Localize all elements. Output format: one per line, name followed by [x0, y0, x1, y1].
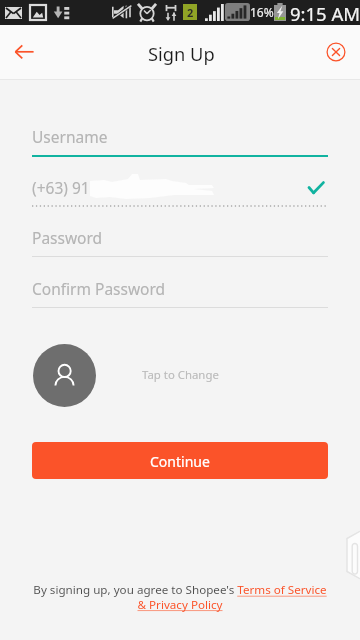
button[interactable]: Close: [314, 25, 358, 69]
staticText: 9:15 AM: [290, 1, 360, 26]
staticText: Sign Up: [148, 41, 215, 66]
staticText: Username: [32, 126, 108, 147]
staticText: Password: [32, 227, 103, 248]
staticText: (+63) 91: [32, 177, 90, 198]
button[interactable]: Tap to Change: [136, 358, 219, 392]
staticText: Confirm Password: [32, 278, 166, 299]
staticText: Continue: [150, 452, 210, 471]
staticText: 16%: [250, 4, 274, 20]
button[interactable]: Change profile photo: [33, 344, 96, 407]
button[interactable]: By signing up, you agree to Shopee's Ter…: [32, 582, 328, 613]
staticText: Tap to Change: [142, 367, 219, 383]
button[interactable]: Chat support: [344, 528, 360, 582]
button[interactable]: Back: [2, 25, 46, 69]
button[interactable]: Continue: [32, 442, 328, 479]
staticText: 2: [187, 5, 194, 20]
